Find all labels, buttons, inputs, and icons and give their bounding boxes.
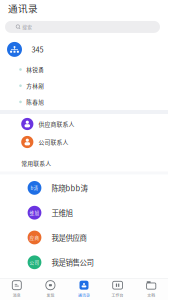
staticText: 公司 bbox=[29, 259, 39, 266]
staticText: 通讯录 bbox=[8, 1, 38, 15]
button[interactable]: 方林剐 bbox=[0, 78, 168, 94]
button[interactable]: 林锐勇 bbox=[0, 61, 168, 78]
staticText: 陈春旭 bbox=[26, 98, 44, 106]
staticText: 王维旭 bbox=[51, 207, 72, 218]
button[interactable]: 维旭 bbox=[0, 200, 168, 225]
button[interactable]: 公司联系人 bbox=[0, 133, 168, 151]
button[interactable]: 供应商联系人 bbox=[0, 115, 168, 133]
staticText: 常用联系人 bbox=[21, 159, 51, 167]
button[interactable]: 发现 bbox=[34, 278, 67, 300]
button[interactable]: 公司 bbox=[0, 250, 168, 275]
button[interactable]: 消息 bbox=[0, 278, 34, 300]
staticText: 林锐勇 bbox=[26, 65, 44, 73]
button[interactable]: 345 bbox=[0, 33, 168, 57]
staticText: 陈晓bbb涛 bbox=[51, 182, 87, 193]
staticText: 通讯录 bbox=[78, 292, 90, 298]
staticText: 搜索 bbox=[22, 23, 32, 30]
staticText: 维旭 bbox=[29, 209, 39, 216]
staticText: 发现 bbox=[46, 292, 54, 298]
staticText: 文档 bbox=[147, 292, 155, 298]
button[interactable]: 陈春旭 bbox=[0, 94, 168, 110]
staticText: 我是供应商 bbox=[51, 232, 86, 243]
staticText: 公司联系人 bbox=[38, 138, 68, 146]
button[interactable]: 文档 bbox=[134, 278, 168, 300]
staticText: 消息 bbox=[13, 292, 21, 298]
staticText: 方林剐 bbox=[26, 82, 44, 90]
button[interactable]: 工作台 bbox=[101, 278, 134, 300]
button[interactable]: b涛 bbox=[0, 175, 168, 200]
staticText: 供应商联系人 bbox=[38, 120, 74, 128]
staticText: b涛 bbox=[30, 185, 38, 191]
button[interactable]: 通讯录 bbox=[67, 278, 101, 300]
staticText: 工作台 bbox=[112, 292, 124, 298]
staticText: 应商 bbox=[29, 234, 39, 241]
staticText: 我是销售公司 bbox=[51, 257, 93, 268]
button[interactable]: 应商 bbox=[0, 225, 168, 250]
staticText: 345 bbox=[31, 44, 43, 55]
